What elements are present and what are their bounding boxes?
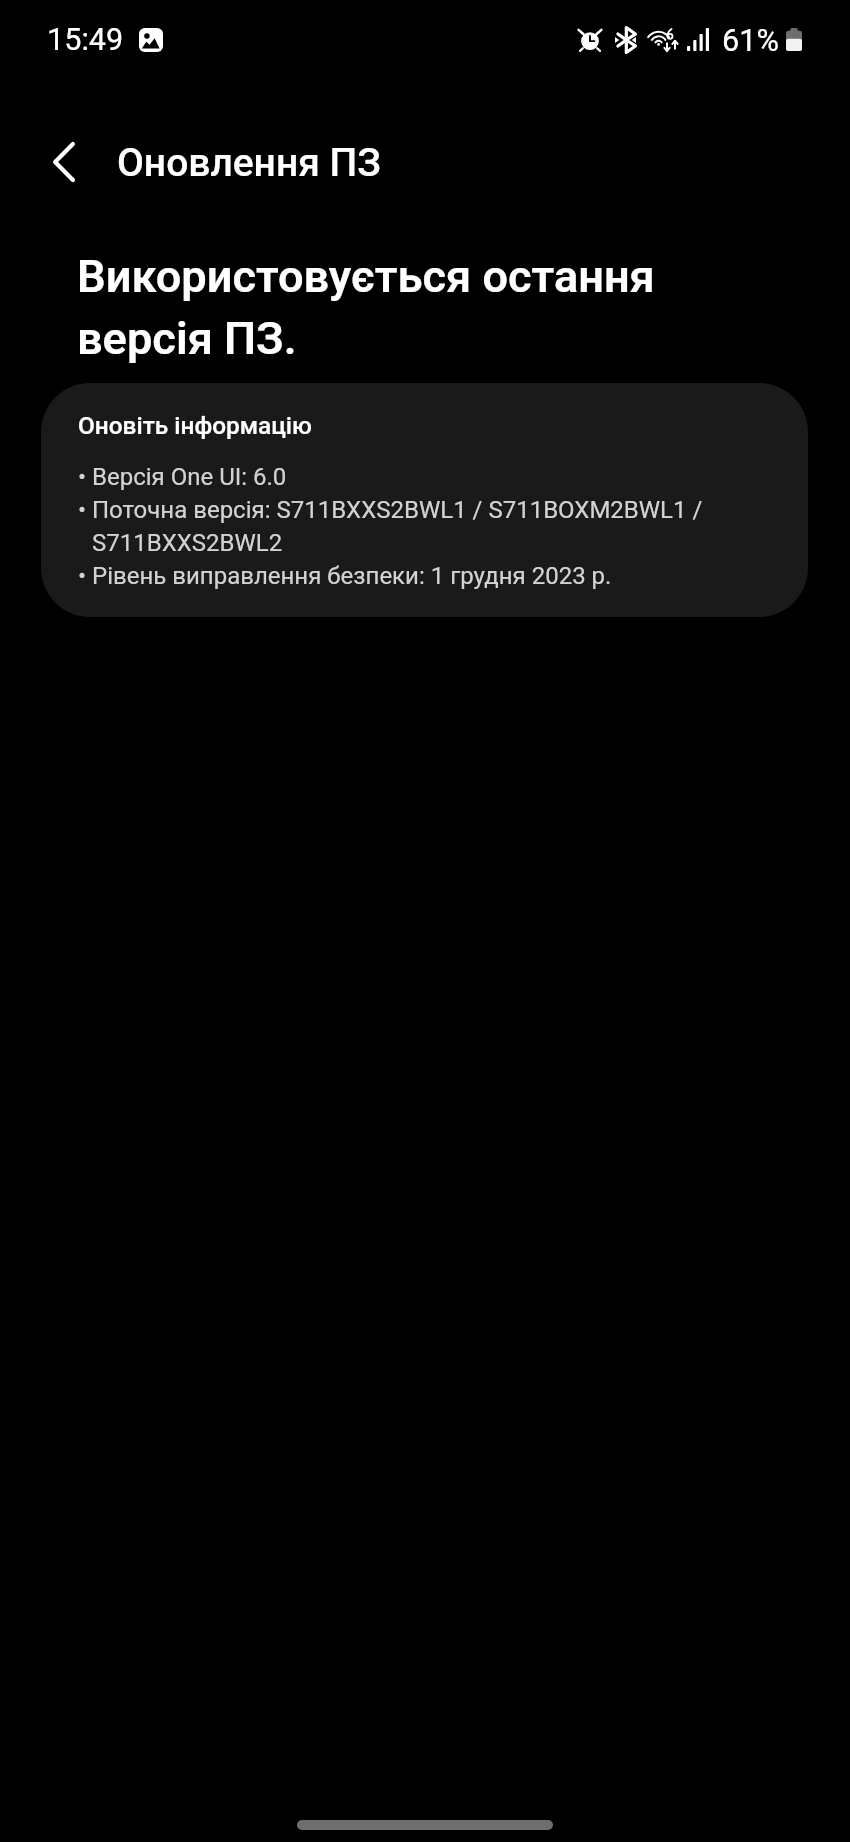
staticText: • [78,558,92,591]
staticText: • [78,459,92,492]
staticText: 61% [722,23,779,59]
staticText: Оновіть інформацію [78,409,312,441]
staticText: • [78,492,92,525]
staticText: Використовується остання версія ПЗ. [77,243,777,367]
staticText: Поточна версія: S711BXXS2BWL1 / S711BOXM… [92,492,732,558]
staticText: Оновлення ПЗ [117,140,381,186]
staticText: Версія One UI: 6.0 [92,459,732,492]
staticText: Рівень виправлення безпеки: 1 грудня 202… [92,558,732,591]
button[interactable]: Back [16,114,112,210]
staticText: 15:49 [47,22,124,58]
